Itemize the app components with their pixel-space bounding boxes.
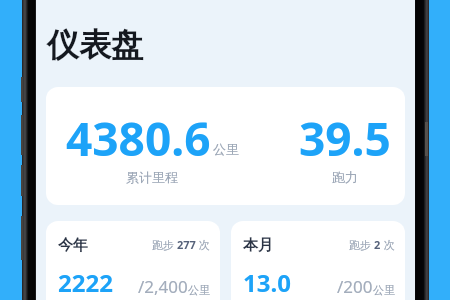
staticText: 39.5	[299, 107, 391, 170]
staticText: 公里	[213, 141, 239, 157]
button[interactable]: 本月	[231, 221, 405, 300]
button[interactable]: 今年	[46, 221, 220, 300]
button[interactable]: 4380.6	[46, 87, 405, 205]
staticText: 2222	[58, 266, 113, 299]
staticText: 公里	[373, 283, 395, 297]
staticText: 4380.6	[66, 107, 211, 170]
staticText: 跑步	[349, 237, 374, 252]
staticText: 跑步	[152, 237, 177, 252]
staticText: 累计里程	[126, 169, 178, 185]
staticText: 次	[381, 237, 395, 252]
staticText: 13.0	[243, 266, 291, 299]
staticText: 今年	[58, 236, 88, 255]
staticText: 次	[196, 237, 210, 252]
staticText: 本月	[243, 236, 273, 255]
staticText: 2	[374, 237, 381, 252]
staticText: 277	[177, 237, 196, 252]
staticText: /200	[337, 275, 373, 298]
staticText: /2,400	[138, 275, 188, 298]
staticText: 仪表盘	[47, 25, 143, 65]
staticText: 公里	[188, 283, 210, 297]
staticText: 跑力	[332, 169, 358, 185]
